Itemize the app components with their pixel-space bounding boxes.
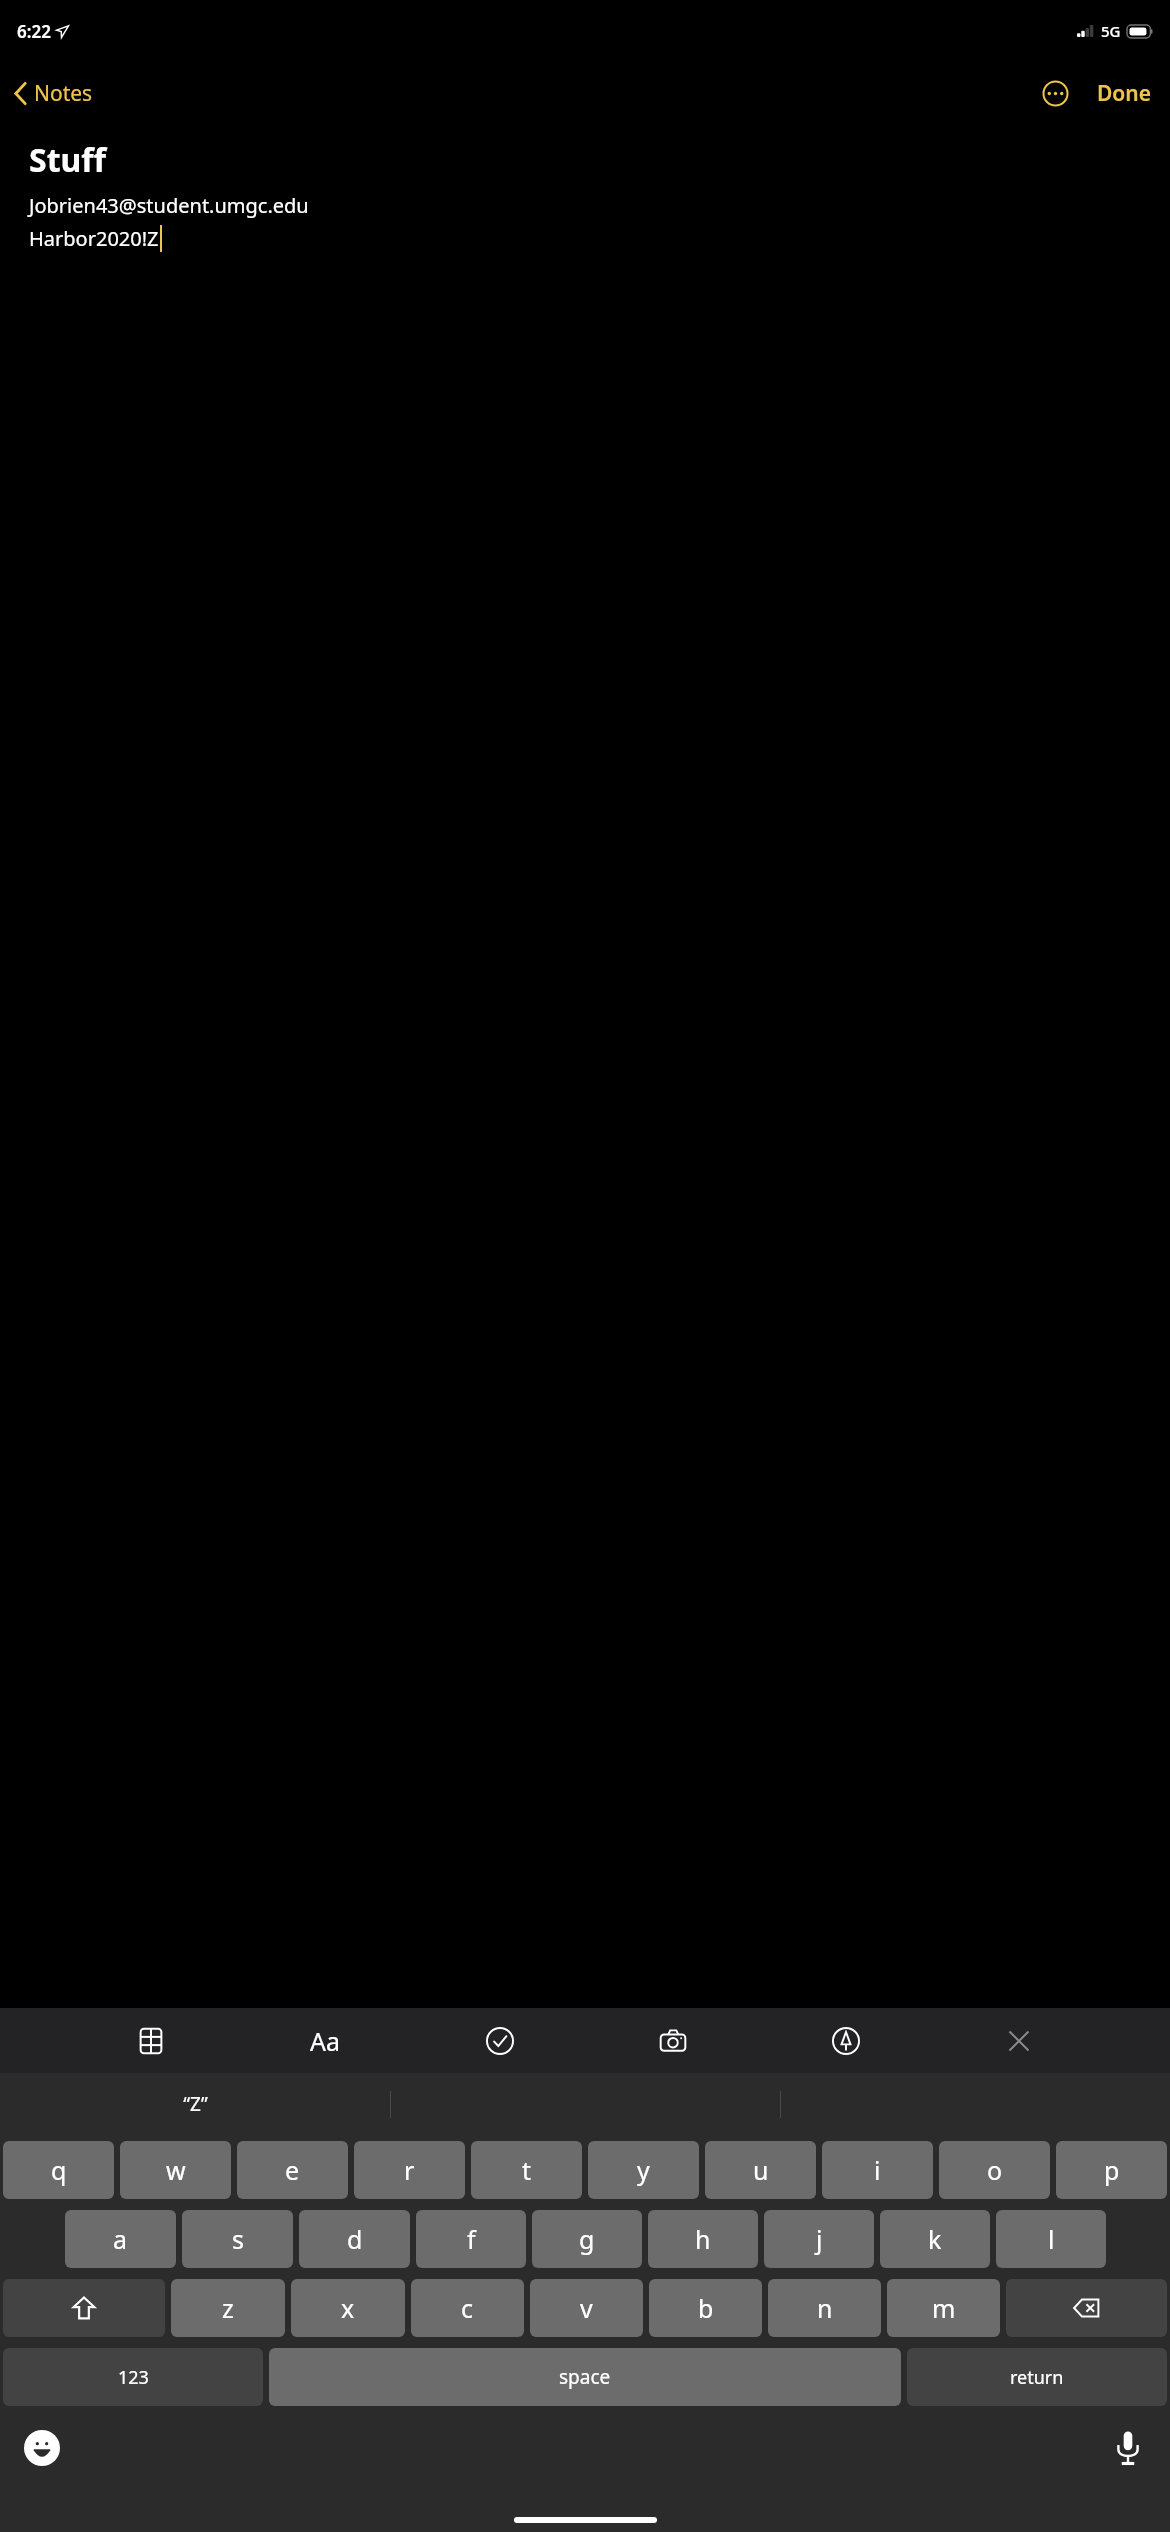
staticText: Harbor2020!Z <box>29 225 159 252</box>
staticText: s <box>232 2222 244 2256</box>
staticText: Jobrien43@student.umgc.edu <box>29 192 309 219</box>
button[interactable]: c <box>411 2279 524 2337</box>
button[interactable]: Dictation <box>1110 2424 1146 2472</box>
staticText: p <box>1104 2153 1120 2187</box>
button[interactable]: m <box>887 2279 1000 2337</box>
staticText: q <box>51 2153 67 2187</box>
staticText: n <box>817 2291 833 2325</box>
button[interactable]: h <box>648 2210 758 2268</box>
button[interactable]: Backspace <box>1006 2279 1167 2337</box>
staticText: y <box>637 2153 650 2187</box>
button[interactable]: Camera <box>651 2019 695 2063</box>
staticText: 123 <box>118 2365 149 2390</box>
staticText: u <box>753 2153 769 2187</box>
button[interactable]: z <box>171 2279 285 2337</box>
staticText: return <box>1010 2365 1064 2390</box>
button[interactable]: Markup <box>824 2019 868 2063</box>
button[interactable]: a <box>65 2210 176 2268</box>
staticText: e <box>285 2153 300 2187</box>
button[interactable]: b <box>649 2279 762 2337</box>
button[interactable]: o <box>939 2141 1050 2199</box>
button[interactable]: e <box>237 2141 348 2199</box>
staticText: a <box>113 2222 128 2256</box>
button[interactable]: s <box>182 2210 293 2268</box>
staticText: k <box>928 2222 942 2256</box>
button[interactable]: Done <box>1093 73 1156 114</box>
button[interactable]: More options <box>1034 72 1077 115</box>
button[interactable]: j <box>764 2210 874 2268</box>
staticText: “Z” <box>183 2091 208 2117</box>
staticText: d <box>347 2222 363 2256</box>
staticText: 6:22 <box>17 20 51 43</box>
button[interactable]: Emoji <box>18 2424 66 2472</box>
button[interactable]: Aa <box>302 2016 349 2066</box>
staticText: f <box>467 2222 476 2256</box>
button[interactable]: x <box>291 2279 405 2337</box>
staticText: h <box>695 2222 711 2256</box>
button[interactable]: Checklist <box>478 2019 522 2063</box>
staticText: Stuff <box>29 138 107 182</box>
button[interactable]: d <box>299 2210 410 2268</box>
button[interactable]: q <box>3 2141 114 2199</box>
button[interactable]: u <box>705 2141 816 2199</box>
button[interactable]: Notes <box>0 73 103 114</box>
staticText: Done <box>1097 79 1152 108</box>
button[interactable]: Close keyboard <box>997 2019 1041 2063</box>
button[interactable]: n <box>768 2279 881 2337</box>
staticText: o <box>987 2153 1003 2187</box>
staticText: i <box>874 2153 881 2187</box>
staticText: x <box>341 2291 355 2325</box>
staticText: r <box>404 2153 415 2187</box>
staticText: z <box>222 2291 234 2325</box>
button[interactable]: v <box>530 2279 643 2337</box>
staticText: m <box>932 2291 956 2325</box>
button[interactable]: Table <box>129 2019 173 2063</box>
button[interactable]: space <box>269 2348 901 2406</box>
button[interactable]: y <box>588 2141 699 2199</box>
button[interactable]: “Z” <box>0 2073 390 2135</box>
button[interactable]: g <box>532 2210 642 2268</box>
button[interactable]: Shift <box>3 2279 165 2337</box>
button[interactable]: return <box>907 2348 1167 2406</box>
staticText: Notes <box>34 79 93 108</box>
button[interactable]: w <box>120 2141 231 2199</box>
button[interactable]: p <box>1056 2141 1167 2199</box>
button[interactable]: i <box>822 2141 933 2199</box>
button[interactable]: t <box>471 2141 582 2199</box>
staticText: c <box>461 2291 474 2325</box>
button[interactable]: k <box>880 2210 990 2268</box>
staticText: w <box>166 2153 186 2187</box>
button[interactable]: r <box>354 2141 465 2199</box>
staticText: space <box>559 2364 611 2390</box>
staticText: g <box>579 2222 595 2256</box>
button[interactable]: l <box>996 2210 1106 2268</box>
staticText: j <box>816 2222 823 2256</box>
staticText: b <box>698 2291 714 2325</box>
staticText: l <box>1048 2222 1055 2256</box>
staticText: 5G <box>1101 21 1121 41</box>
staticText: v <box>580 2291 593 2325</box>
staticText: t <box>522 2153 532 2187</box>
button[interactable]: 123 <box>3 2348 263 2406</box>
button[interactable]: f <box>416 2210 526 2268</box>
staticText: Aa <box>310 2024 341 2058</box>
